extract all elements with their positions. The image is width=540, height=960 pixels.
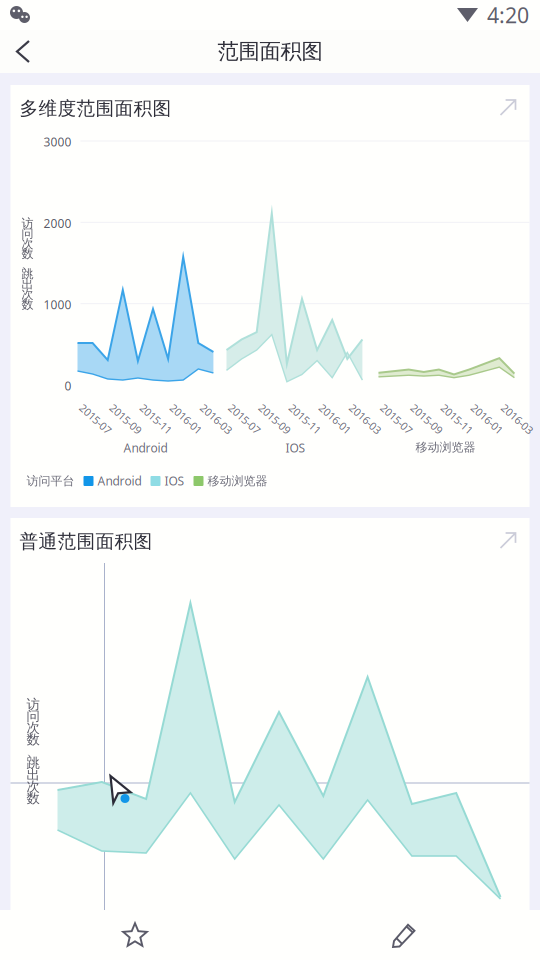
staticText: 移动浏览器 (207, 474, 267, 488)
staticText: 2000 (43, 215, 71, 231)
staticText: 2016-03 (346, 412, 385, 426)
staticText: 2016-01 (167, 412, 206, 426)
staticText: 4:20 (487, 1, 529, 29)
staticText: 出 (21, 277, 33, 291)
staticText: 数 (21, 297, 33, 312)
staticText: 移动浏览器 (415, 440, 475, 455)
staticText: 2016-03 (498, 412, 537, 426)
staticText: 2016-01 (316, 412, 355, 426)
staticText: 访 (21, 216, 33, 231)
staticText: 次 (21, 287, 33, 302)
staticText: 次 (21, 236, 33, 251)
staticText: 2015-09 (106, 412, 145, 426)
staticText: Android (97, 473, 141, 489)
staticText: 2015-11 (437, 412, 476, 426)
button[interactable]: Edit (270, 910, 540, 960)
staticText: 次 (26, 778, 39, 795)
staticText: 0 (64, 378, 71, 394)
staticText: 出 (26, 767, 39, 783)
staticText: 2016-03 (197, 412, 236, 426)
staticText: 3000 (43, 134, 71, 150)
staticText: 、 (26, 743, 39, 759)
staticText: 1000 (43, 297, 71, 313)
staticText: 2015-07 (225, 412, 264, 426)
staticText: 2016-01 (468, 412, 507, 426)
button[interactable]: Favorite (0, 910, 270, 960)
staticText: 普通范围面积图 (19, 530, 152, 553)
staticText: IOS (164, 473, 184, 489)
staticText: 范围面积图 (217, 38, 322, 65)
button[interactable]: Expand chart (493, 526, 522, 555)
staticText: IOS (285, 440, 305, 456)
button[interactable]: Expand chart (493, 93, 522, 122)
staticText: 2015-07 (76, 412, 115, 426)
staticText: 访 (26, 696, 39, 712)
staticText: 、 (21, 257, 33, 271)
staticText: 2015-09 (407, 412, 446, 426)
staticText: 2015-11 (285, 412, 324, 426)
staticText: 跳 (26, 755, 39, 771)
staticText: 问 (26, 708, 39, 724)
staticText: 数 (21, 246, 33, 261)
staticText: 数 (26, 731, 39, 748)
staticText: 问 (21, 226, 33, 241)
staticText: 数 (26, 790, 39, 807)
staticText: 2015-07 (377, 412, 416, 426)
staticText: 2015-09 (255, 412, 294, 426)
staticText: 次 (26, 720, 39, 736)
staticText: 2015-11 (136, 412, 175, 426)
staticText: 跳 (21, 267, 33, 281)
staticText: 多维度范围面积图 (19, 97, 171, 120)
staticText: Android (123, 440, 167, 456)
staticText: 访问平台 (26, 474, 74, 488)
button[interactable]: Back (0, 28, 46, 75)
